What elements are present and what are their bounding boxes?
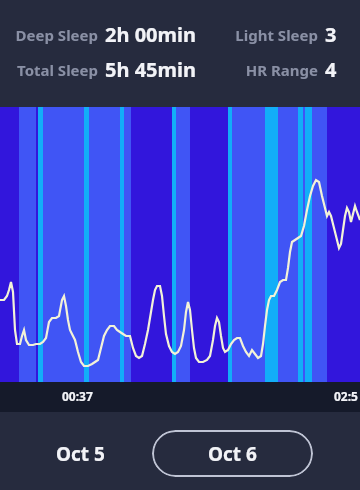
staticText: Total Sleep — [0, 60, 98, 80]
button[interactable]: Total Sleep — [0, 56, 222, 83]
button[interactable]: Light Sleep — [222, 21, 337, 48]
staticText: HR Range — [222, 60, 318, 80]
staticText: 3 — [325, 21, 337, 48]
staticText: Light Sleep — [222, 25, 318, 45]
staticText: Oct 5 — [56, 441, 105, 467]
staticText: 02:5 — [334, 388, 358, 404]
staticText: 4 — [325, 56, 337, 83]
staticText: 00:37 — [62, 388, 93, 404]
staticText: Deep Sleep — [0, 25, 98, 45]
button[interactable]: Oct 6 — [152, 430, 313, 477]
button[interactable]: Sleep stages and heart rate chart — [0, 107, 360, 382]
staticText: 2h 00min — [105, 21, 196, 48]
button[interactable]: Deep Sleep — [0, 21, 222, 48]
button[interactable]: HR Range — [222, 56, 337, 83]
button[interactable]: Oct 5 — [40, 430, 120, 477]
staticText: 5h 45min — [105, 56, 196, 83]
staticText: Oct 6 — [208, 441, 257, 467]
